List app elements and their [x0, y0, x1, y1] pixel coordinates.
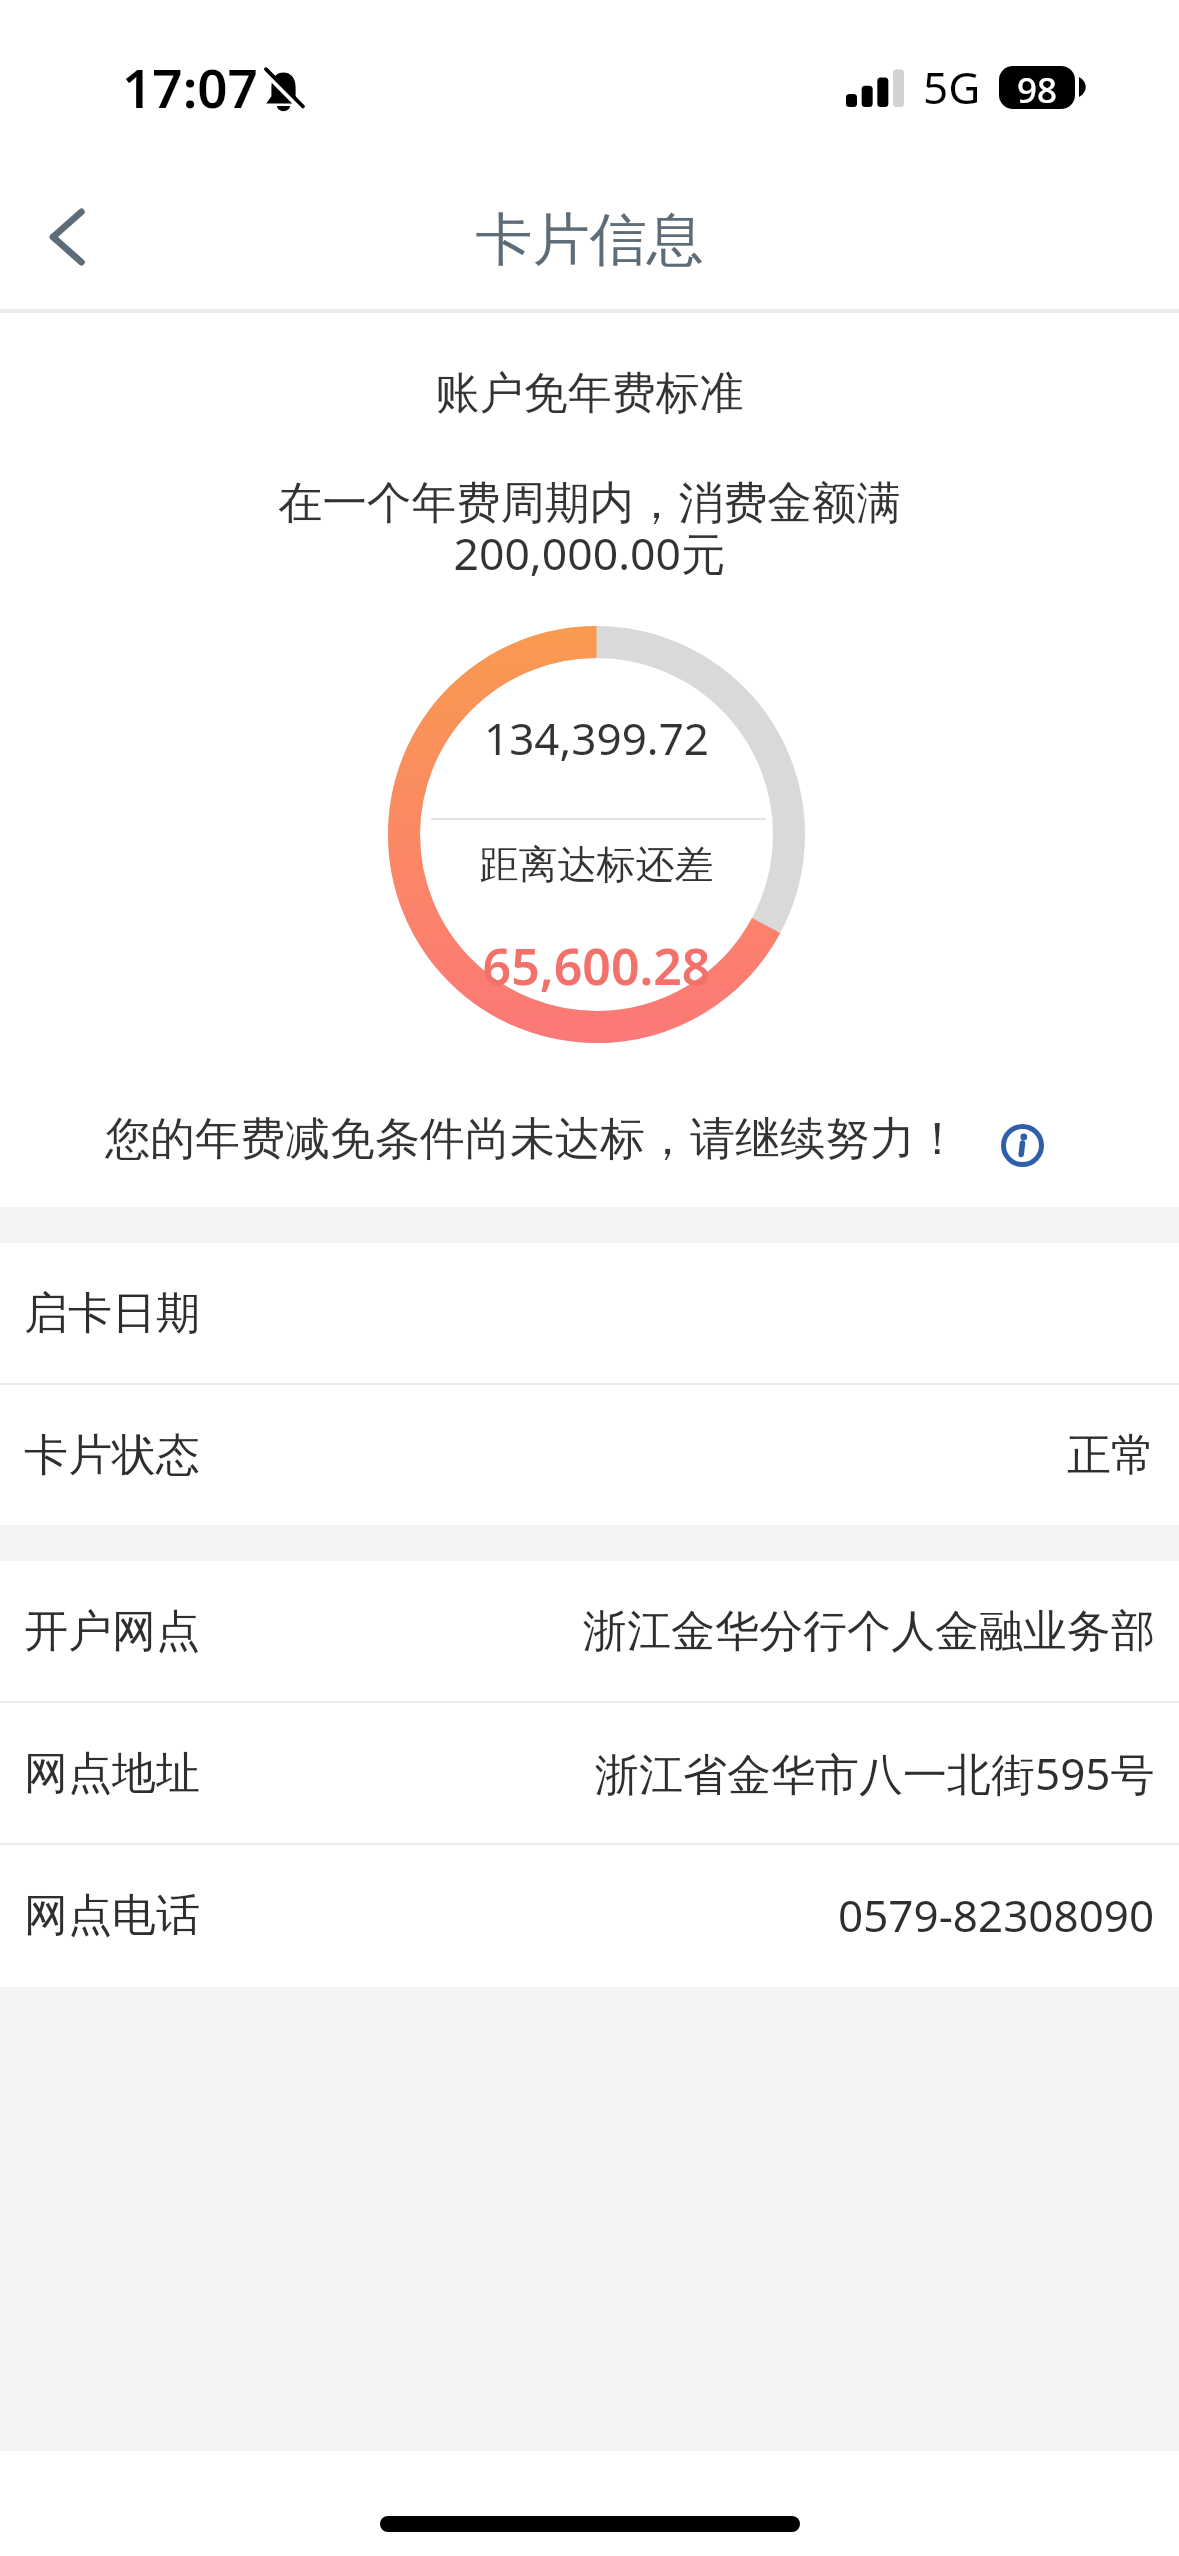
staticText: 距离达标还差	[388, 840, 805, 889]
button[interactable]: 网点电话	[0, 1845, 1179, 1985]
staticText: 卡片状态	[24, 1428, 200, 1483]
staticText: 65,600.28	[388, 932, 805, 1000]
staticText: 在一个年费周期内，消费金额满 200,000.00元	[0, 475, 1179, 583]
button[interactable]: 网点地址	[0, 1703, 1179, 1843]
staticText: 正常	[1067, 1428, 1155, 1483]
staticText: 您的年费减免条件尚未达标，请继续努力！	[105, 1111, 960, 1168]
staticText: 卡片信息	[0, 204, 1179, 276]
staticText: 开户网点	[24, 1604, 200, 1659]
other: Silent mode	[264, 70, 303, 113]
button[interactable]: 启卡日期	[0, 1243, 1179, 1383]
staticText: 浙江省金华市八一北街595号	[595, 1743, 1155, 1803]
staticText: 网点地址	[24, 1746, 200, 1801]
staticText: 5G	[923, 57, 981, 117]
staticText: 0579-82308090	[838, 1885, 1155, 1945]
button[interactable]: More information about the annual-fee wa…	[1001, 1124, 1044, 1167]
staticText: 账户免年费标准	[0, 366, 1179, 421]
button[interactable]: 卡片状态	[0, 1385, 1179, 1525]
button[interactable]: Back	[20, 182, 130, 292]
other: Cellular signal	[846, 69, 904, 107]
button[interactable]: 开户网点	[0, 1561, 1179, 1701]
staticText: 启卡日期	[24, 1286, 200, 1341]
staticText: 134,399.72	[388, 708, 805, 768]
staticText: 浙江金华分行个人金融业务部	[583, 1604, 1155, 1659]
staticText: 17:07	[122, 51, 258, 123]
staticText: 98	[1017, 66, 1058, 109]
staticText: 网点电话	[24, 1888, 200, 1943]
